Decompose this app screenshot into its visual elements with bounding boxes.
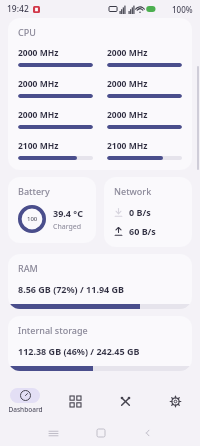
button[interactable]: Battery	[8, 177, 96, 243]
staticText: Battery	[18, 185, 50, 197]
staticText: Internal storage	[18, 324, 88, 336]
staticText: 39.4 °C	[53, 207, 83, 219]
staticText: 2100 MHz	[107, 140, 148, 152]
staticText: 60 B/s	[129, 225, 156, 237]
button[interactable]: Internal storage	[8, 316, 192, 371]
staticText: Network	[114, 185, 152, 197]
staticText: 100%	[172, 4, 193, 15]
staticText: 19:42	[7, 3, 29, 15]
button[interactable]: CPU	[8, 18, 192, 170]
staticText: 0 B/s	[129, 206, 151, 218]
button[interactable]: Tools	[100, 382, 150, 420]
staticText: 2000 MHz	[107, 109, 148, 121]
staticText: 2000 MHz	[18, 109, 59, 121]
staticText: 2000 MHz	[18, 78, 59, 90]
staticText: 2000 MHz	[107, 78, 148, 90]
button[interactable]: Apps	[50, 382, 100, 420]
staticText: CPU	[18, 26, 36, 38]
button[interactable]: Settings	[150, 382, 200, 420]
staticText: RAM	[18, 262, 38, 274]
staticText: 8.56 GB (72%) / 11.94 GB	[18, 283, 125, 295]
staticText: 112.38 GB (46%) / 242.45 GB	[18, 345, 140, 357]
button[interactable]: Dashboard	[0, 382, 50, 420]
staticText: Dashboard	[8, 405, 43, 414]
staticText: 2000 MHz	[18, 47, 59, 59]
staticText: 100	[27, 215, 38, 223]
staticText: Charged	[53, 222, 82, 232]
button[interactable]: Network	[104, 177, 192, 247]
staticText: 2000 MHz	[107, 47, 148, 59]
button[interactable]: Recents	[30, 420, 77, 446]
button[interactable]: Home	[77, 420, 124, 446]
staticText: 2100 MHz	[18, 140, 59, 152]
button[interactable]: RAM	[8, 254, 192, 309]
